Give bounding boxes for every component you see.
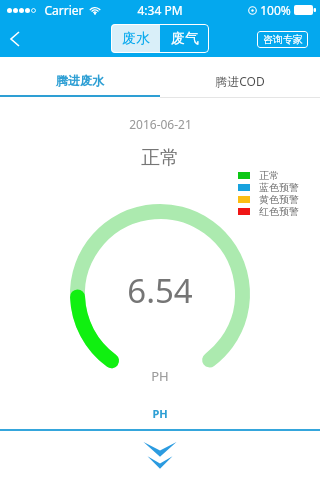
staticText: 100% — [260, 2, 291, 18]
button[interactable]: 废气 — [160, 24, 209, 53]
staticText: 6.54 — [127, 268, 193, 313]
staticText: 咨询专家 — [263, 33, 303, 46]
staticText: 腾进COD — [215, 73, 265, 89]
staticText: PH — [151, 367, 169, 385]
staticText: Carrier — [44, 2, 84, 18]
button[interactable]: Back — [0, 20, 29, 57]
button[interactable]: 腾进废水 — [0, 57, 160, 96]
staticText: 废水 — [122, 30, 150, 48]
staticText: 黄色预警 — [259, 193, 299, 205]
staticText: 腾进废水 — [56, 73, 104, 88]
button[interactable]: 咨询专家 — [257, 31, 308, 48]
staticText: 蓝色预警 — [259, 181, 299, 193]
staticText: 正常 — [141, 146, 179, 170]
button[interactable]: 废水 — [111, 24, 160, 53]
button[interactable]: 腾进COD — [160, 57, 320, 96]
staticText: 正常 — [259, 169, 279, 181]
staticText: 2016-06-21 — [129, 116, 192, 132]
staticText: 4:34 PM — [137, 2, 183, 18]
button[interactable]: Scroll down for more — [130, 438, 190, 474]
staticText: 废气 — [171, 30, 199, 48]
staticText: PH — [152, 406, 168, 421]
staticText: 红色预警 — [259, 205, 299, 217]
button[interactable]: PH — [0, 400, 320, 427]
